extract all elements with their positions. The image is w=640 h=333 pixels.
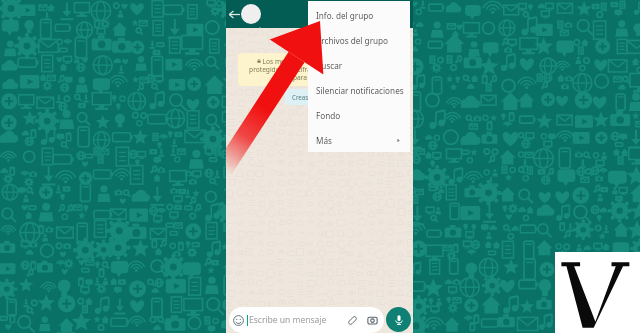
staticText: Más bbox=[316, 135, 332, 146]
button[interactable]: Fondo bbox=[308, 103, 410, 128]
button[interactable]: Back bbox=[228, 8, 241, 21]
staticText: Archivos del grupo bbox=[316, 35, 389, 46]
button[interactable]: Buscar bbox=[308, 53, 410, 78]
staticText: Info. del grupo bbox=[316, 10, 374, 21]
staticText: Fondo bbox=[316, 110, 341, 121]
button[interactable]: Más bbox=[308, 128, 410, 152]
button[interactable]: Profile bbox=[241, 4, 261, 24]
staticText: Los mensajes enviados a este chat están … bbox=[245, 57, 395, 82]
staticText: Buscar bbox=[316, 60, 343, 71]
staticText: Creaste este grupo bbox=[292, 93, 348, 101]
button[interactable]: Voice message bbox=[386, 307, 411, 332]
button[interactable]: Archivos del grupo bbox=[308, 28, 410, 53]
staticText: Escribe un mensaje bbox=[249, 314, 327, 326]
button[interactable]: Info. del grupo bbox=[308, 3, 410, 28]
button[interactable]: Silenciar notificaciones bbox=[308, 78, 410, 103]
staticText: Silenciar notificaciones bbox=[316, 85, 404, 96]
button[interactable]: Escribe un mensaje bbox=[229, 307, 384, 333]
